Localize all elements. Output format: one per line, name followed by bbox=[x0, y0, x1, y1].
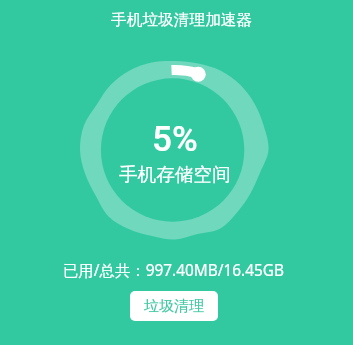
button[interactable]: 垃圾清理 bbox=[130, 291, 218, 321]
staticText: 5% bbox=[152, 119, 198, 160]
staticText: 垃圾清理 bbox=[144, 297, 204, 316]
staticText: 手机垃圾清理加速器 bbox=[111, 10, 253, 30]
staticText: 已用/总共：997.40MB/16.45GB bbox=[63, 260, 285, 281]
staticText: 手机存储空间 bbox=[119, 163, 231, 186]
